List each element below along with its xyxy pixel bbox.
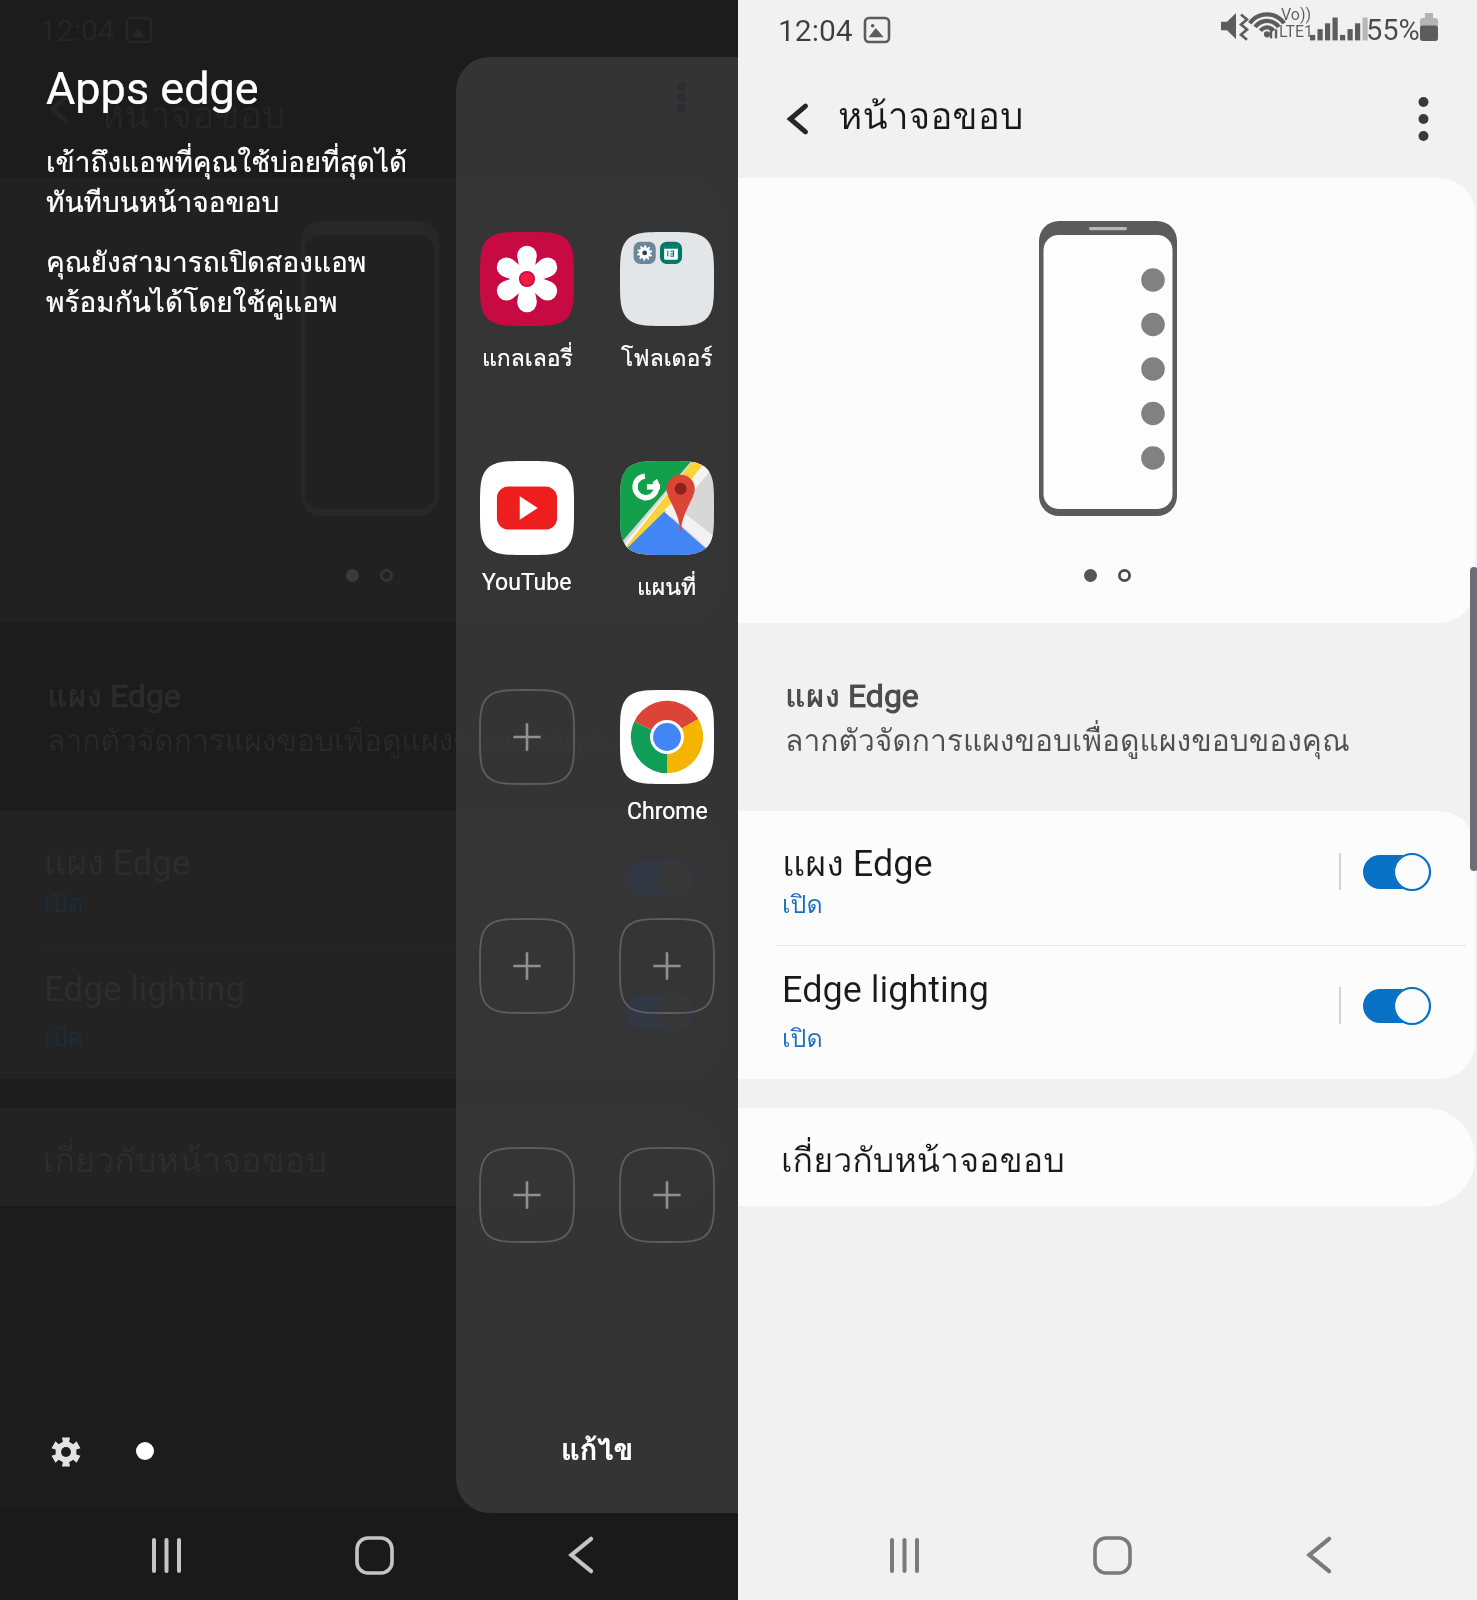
button[interactable] [605, 1148, 729, 1242]
staticText: แผง Edge [782, 835, 933, 892]
button[interactable]: แก้ไข [518, 1418, 676, 1484]
staticText: แผนที่ [637, 569, 697, 606]
staticText: YouTube [482, 569, 572, 596]
button[interactable]: Chrome [605, 690, 729, 825]
staticText: Apps edge [46, 62, 259, 115]
button[interactable]: Back [1274, 1510, 1364, 1600]
staticText: 55% [1366, 13, 1420, 47]
staticText: แก้ไข [561, 1427, 634, 1473]
button[interactable]: Edge panel settings [37, 1423, 94, 1480]
staticText: เปิด [782, 1018, 823, 1058]
button[interactable]: YouTube [465, 461, 589, 596]
button[interactable]: Home [1067, 1510, 1157, 1600]
button[interactable] [738, 805, 1475, 939]
staticText: เปิด [44, 1018, 84, 1056]
button[interactable]: โฟลเดอร์ [605, 232, 729, 377]
staticText: โฟลเดอร์ [621, 340, 713, 377]
staticText: Chrome [627, 798, 708, 825]
button[interactable]: แผนที่ [605, 461, 729, 606]
button[interactable] [465, 919, 589, 1013]
staticText: หน้าจอขอบ [100, 85, 286, 144]
staticText: LTE1 [1279, 22, 1314, 41]
button[interactable] [605, 919, 729, 1013]
staticText: เกี่ยวกับหน้าจอขอบ [781, 1133, 1065, 1187]
button[interactable] [738, 1108, 1475, 1206]
staticText: เปิด [44, 884, 84, 922]
button[interactable]: Recents [859, 1510, 949, 1600]
staticText: ลากตัวจัดการแผงขอบเพื่อดูแผงขอบของคุณ [47, 717, 612, 765]
staticText: Vo)) [1281, 5, 1312, 24]
button[interactable]: Toggle แผง Edge [1355, 829, 1455, 914]
button[interactable]: แกลเลอรี่ [465, 232, 589, 377]
staticText: Edge lighting [44, 969, 246, 1010]
button[interactable]: Toggle Edge lighting [1355, 963, 1455, 1048]
staticText: แผง Edge [785, 670, 919, 721]
staticText: เปิด [782, 884, 823, 924]
button[interactable] [465, 1148, 589, 1242]
staticText: คุณยังสามารถเปิดสองแอพ พร้อมกันได้โดยใช้… [46, 240, 367, 324]
button[interactable] [465, 690, 589, 784]
button[interactable]: Recents [121, 1510, 211, 1600]
button[interactable]: More options [1388, 84, 1458, 154]
staticText: 12:04 [40, 13, 115, 48]
staticText: แผง Edge [47, 670, 181, 721]
staticText: หน้าจอขอบ [838, 86, 1024, 145]
button[interactable] [738, 939, 1475, 1073]
staticText: ลากตัวจัดการแผงขอบเพื่อดูแผงขอบของคุณ [785, 717, 1350, 765]
staticText: แกลเลอรี่ [482, 340, 573, 377]
staticText: 12:04 [778, 13, 853, 48]
button[interactable]: Back [764, 84, 834, 154]
staticText: เข้าถึงแอพที่คุณใช้บ่อยที่สุดได้ ทันทีบน… [46, 140, 408, 224]
button[interactable]: Home [329, 1510, 419, 1600]
staticText: Edge lighting [782, 969, 989, 1011]
button[interactable]: Back [536, 1510, 626, 1600]
